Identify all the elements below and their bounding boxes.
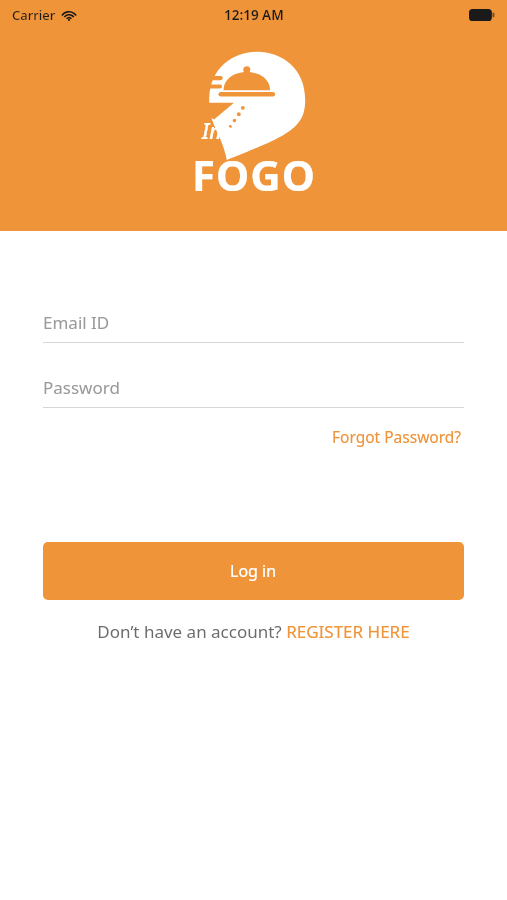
staticText: Password [43, 376, 120, 399]
staticText: FOGO [192, 146, 316, 203]
staticText: Forgot Password? [332, 426, 462, 447]
button[interactable]: Log in [43, 542, 464, 600]
button[interactable]: Forgot Password? [330, 423, 464, 450]
staticText: 12:19 AM [224, 6, 284, 24]
staticText: Insta [202, 117, 251, 146]
button[interactable]: Don’t have an account? REGISTER HERE [43, 620, 464, 643]
button[interactable]: Password [43, 376, 464, 408]
button[interactable]: Email ID [43, 311, 464, 343]
staticText: Log in [230, 560, 277, 582]
staticText: Email ID [43, 311, 110, 334]
staticText: Carrier [12, 6, 56, 24]
staticText: Don’t have an account? REGISTER HERE [97, 620, 410, 643]
